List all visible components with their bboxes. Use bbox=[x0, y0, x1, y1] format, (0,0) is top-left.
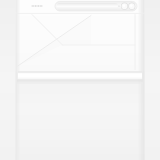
button[interactable]: White Samsung tablet book cover product … bbox=[0, 0, 160, 160]
